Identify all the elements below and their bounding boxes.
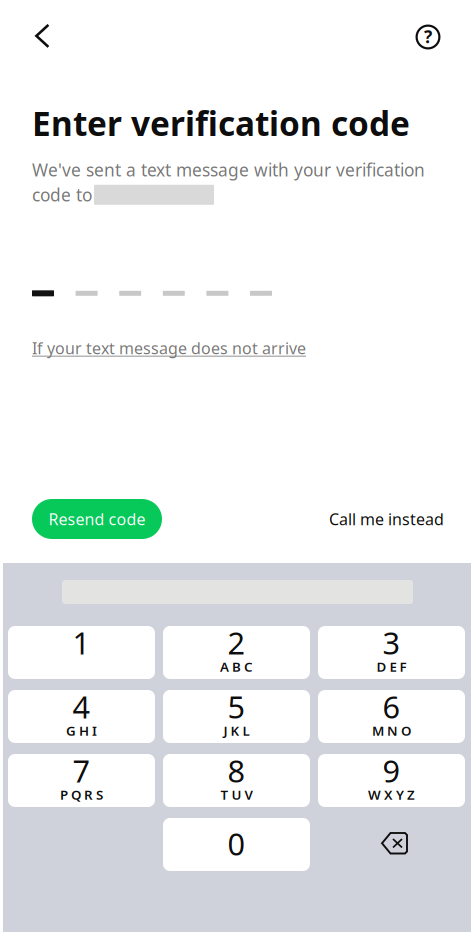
- staticText: Enter verification code: [32, 101, 410, 145]
- staticText: ?: [424, 25, 432, 48]
- staticText: J K L: [223, 722, 249, 739]
- button[interactable]: 1: [8, 626, 155, 679]
- button[interactable]: Resend code: [32, 499, 162, 539]
- button[interactable]: 0: [163, 818, 310, 871]
- button[interactable]: 8: [163, 754, 310, 807]
- staticText: 8: [227, 750, 245, 791]
- staticText: 5: [227, 686, 245, 727]
- button[interactable]: 2: [163, 626, 310, 679]
- staticText: D E F: [376, 658, 406, 675]
- staticText: Call me instead: [329, 508, 444, 530]
- button[interactable]: Call me instead: [329, 499, 444, 539]
- button[interactable]: Delete: [318, 818, 465, 871]
- staticText: G H I: [66, 722, 97, 739]
- button[interactable]: 6: [318, 690, 465, 743]
- staticText: 4: [72, 686, 90, 727]
- staticText: 0: [227, 823, 245, 864]
- staticText: M N O: [372, 722, 411, 739]
- staticText: 2: [227, 622, 245, 663]
- button[interactable]: Back: [19, 13, 65, 59]
- button[interactable]: 3: [318, 626, 465, 679]
- staticText: 7: [72, 750, 90, 791]
- button[interactable]: 4: [8, 690, 155, 743]
- button[interactable]: 9: [318, 754, 465, 807]
- staticText: A B C: [220, 658, 253, 675]
- button[interactable]: If your text message does not arrive: [32, 337, 306, 358]
- button[interactable]: 7: [8, 754, 155, 807]
- staticText: 9: [382, 750, 400, 791]
- staticText: If your text message does not arrive: [32, 337, 306, 358]
- staticText: Resend code: [48, 508, 145, 530]
- staticText: 6: [382, 686, 400, 727]
- button[interactable]: Help: [404, 13, 450, 59]
- staticText: 1: [72, 622, 90, 663]
- staticText: code to: [32, 183, 92, 206]
- staticText: W X Y Z: [368, 786, 415, 803]
- staticText: 3: [382, 622, 400, 663]
- button[interactable]: 5: [163, 690, 310, 743]
- staticText: We've sent a text message with your veri…: [32, 158, 425, 181]
- staticText: T U V: [220, 786, 252, 803]
- staticText: P Q R S: [60, 786, 103, 803]
